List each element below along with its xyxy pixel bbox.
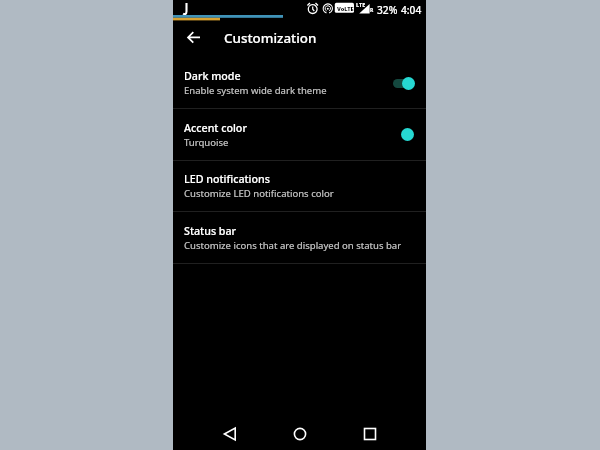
button[interactable]: LED notifications: [173, 161, 426, 211]
staticText: 32%: [377, 3, 398, 17]
staticText: LTE: [356, 1, 366, 8]
staticText: VoLTE: [337, 5, 354, 13]
button[interactable]: Accent color: [173, 109, 426, 160]
button[interactable]: [393, 77, 414, 90]
staticText: Turquoise: [184, 136, 229, 149]
button[interactable]: Back: [184, 23, 210, 49]
staticText: R: [370, 7, 374, 14]
button[interactable]: Recents: [355, 419, 385, 449]
staticText: LED notifications: [184, 172, 270, 187]
staticText: Accent color: [184, 121, 247, 136]
button[interactable]: Dark mode: [173, 57, 426, 109]
button[interactable]: Status bar: [173, 212, 426, 263]
staticText: Status bar: [184, 224, 237, 239]
button[interactable]: Back: [215, 419, 245, 449]
staticText: 4:04: [401, 3, 422, 17]
staticText: Dark mode: [184, 69, 241, 84]
staticText: Customization: [224, 29, 317, 47]
button[interactable]: Home: [285, 419, 315, 449]
staticText: Customize icons that are displayed on st…: [184, 239, 402, 252]
staticText: Enable system wide dark theme: [184, 84, 327, 97]
staticText: Customize LED notifications color: [184, 187, 334, 200]
